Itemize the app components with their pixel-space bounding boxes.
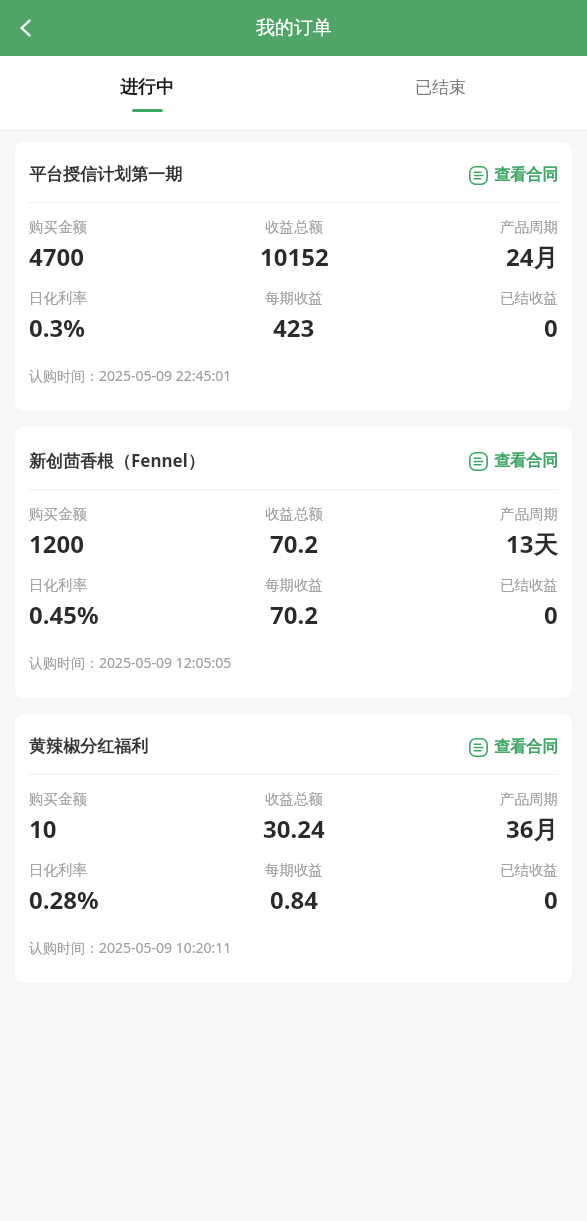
staticText: 每期收益 [265,289,323,307]
staticText: 已结收益 [500,289,558,307]
staticText: 70.2 [270,598,318,631]
staticText: 1200 [29,527,84,560]
staticText: 0 [544,598,558,631]
staticText: 日化利率 [29,861,87,879]
staticText: 13天 [506,527,558,560]
staticText: 已结收益 [500,576,558,594]
button[interactable]: 进行中 [0,56,293,131]
staticText: 新创茴香根（Fennel） [29,449,469,472]
staticText: 423 [273,311,315,344]
staticText: 24月 [506,240,558,273]
staticText: 日化利率 [29,576,87,594]
staticText: 10152 [260,240,329,273]
staticText: 0.28% [29,883,99,916]
staticText: 购买金额 [29,790,87,808]
staticText: 收益总额 [265,218,323,236]
staticText: 每期收益 [265,576,323,594]
staticText: 购买金额 [29,218,87,236]
button[interactable]: 新创茴香根（Fennel） [15,427,572,698]
staticText: 查看合同 [494,451,558,471]
staticText: 进行中 [120,76,174,99]
staticText: 黄辣椒分红福利 [29,736,469,757]
staticText: 产品周期 [500,505,558,523]
button[interactable]: 查看合同 [469,737,558,757]
staticText: 收益总额 [265,790,323,808]
button[interactable]: 黄辣椒分红福利 [15,714,572,983]
staticText: 10 [29,812,57,845]
staticText: 我的订单 [256,16,332,40]
staticText: 0.3% [29,311,85,344]
staticText: 产品周期 [500,790,558,808]
staticText: 已结收益 [500,861,558,879]
staticText: 认购时间：2025-05-09 22:45:01 [29,366,232,385]
staticText: 收益总额 [265,505,323,523]
staticText: 认购时间：2025-05-09 10:20:11 [29,938,232,957]
button[interactable]: 已结束 [293,56,587,131]
button[interactable]: 平台授信计划第一期 [15,142,572,411]
staticText: 30.24 [263,812,325,845]
button[interactable]: Back [0,2,52,54]
staticText: 70.2 [270,527,318,560]
staticText: 每期收益 [265,861,323,879]
staticText: 已结束 [415,77,466,98]
staticText: 36月 [506,812,558,845]
staticText: 0.45% [29,598,99,631]
button[interactable]: 查看合同 [469,165,558,185]
staticText: 0 [544,883,558,916]
staticText: 平台授信计划第一期 [29,164,469,185]
staticText: 查看合同 [494,737,558,757]
staticText: 4700 [29,240,84,273]
button[interactable]: 查看合同 [469,451,558,471]
staticText: 0.84 [270,883,318,916]
staticText: 认购时间：2025-05-09 12:05:05 [29,653,232,672]
staticText: 购买金额 [29,505,87,523]
staticText: 产品周期 [500,218,558,236]
staticText: 查看合同 [494,165,558,185]
staticText: 0 [544,311,558,344]
staticText: 日化利率 [29,289,87,307]
